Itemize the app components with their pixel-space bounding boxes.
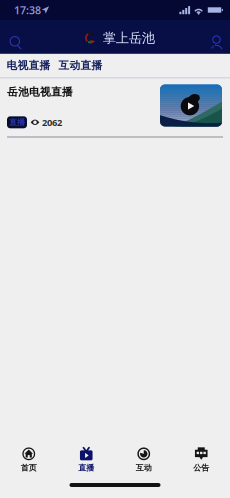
- button[interactable]: 电视直播: [0, 55, 54, 76]
- staticText: 直播: [78, 463, 94, 473]
- staticText: 掌上岳池: [103, 30, 155, 46]
- staticText: 岳池电视直播: [7, 85, 73, 99]
- staticText: 17:38: [14, 3, 41, 17]
- staticText: 互动直播: [58, 59, 102, 72]
- button[interactable]: 我的: [201, 23, 230, 50]
- button[interactable]: 搜索: [0, 21, 30, 51]
- staticText: 直播: [9, 117, 25, 127]
- staticText: 电视直播: [6, 59, 50, 72]
- button[interactable]: 岳池电视直播: [0, 78, 230, 137]
- staticText: 公告: [193, 463, 209, 473]
- staticText: 首页: [21, 463, 37, 473]
- staticText: 互动: [136, 463, 152, 473]
- staticText: 2062: [42, 116, 62, 128]
- button[interactable]: 互动: [115, 444, 172, 476]
- button[interactable]: 首页: [0, 444, 57, 476]
- button[interactable]: 互动直播: [54, 55, 106, 76]
- button[interactable]: 直播: [57, 444, 115, 476]
- button[interactable]: 公告: [172, 444, 230, 476]
